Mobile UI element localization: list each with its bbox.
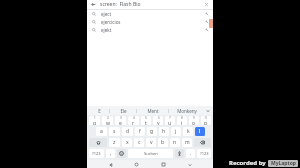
- button[interactable]: 0: [201, 116, 211, 125]
- staticText: g: [150, 128, 154, 135]
- button[interactable]: ?123: [197, 149, 211, 158]
- staticText: k: [187, 128, 190, 135]
- staticText: e: [119, 120, 122, 125]
- staticText: Monkeny: [177, 108, 197, 114]
- button[interactable]: 5: [141, 116, 151, 125]
- button[interactable]: j: [171, 127, 181, 136]
- button[interactable]: Voice input: [175, 149, 184, 158]
- button[interactable]: f: [135, 127, 145, 136]
- button[interactable]: c: [134, 138, 144, 147]
- button[interactable]: Ele: [110, 106, 136, 115]
- staticText: Suchen: [144, 151, 158, 156]
- staticText: Recorded by: [229, 159, 266, 167]
- staticText: a: [100, 128, 103, 135]
- button[interactable]: Hide keyboard: [186, 161, 193, 168]
- staticText: 7: [169, 116, 171, 120]
- staticText: v: [150, 139, 153, 146]
- staticText: 3: [120, 116, 122, 120]
- button[interactable]: 4: [128, 116, 139, 125]
- staticText: p: [204, 120, 208, 125]
- staticText: ?123: [92, 151, 101, 156]
- staticText: Ment: [147, 108, 159, 114]
- button[interactable]: 6: [153, 116, 163, 125]
- staticText: d: [126, 128, 130, 135]
- other: Insert suggestion: [205, 20, 209, 24]
- staticText: eject: [101, 11, 112, 17]
- staticText: x: [126, 139, 129, 146]
- staticText: h: [162, 128, 166, 135]
- button[interactable]: 9: [189, 116, 199, 125]
- staticText: t: [145, 120, 147, 125]
- button[interactable]: s: [109, 127, 120, 136]
- button[interactable]: Ment: [137, 106, 168, 115]
- button[interactable]: b: [158, 138, 168, 147]
- button[interactable]: 1: [89, 116, 100, 125]
- button[interactable]: Emoji: [117, 149, 126, 158]
- staticText: MyLaptop: [271, 160, 296, 167]
- button[interactable]: More suggestions: [204, 107, 212, 115]
- button[interactable]: d: [122, 127, 133, 136]
- button[interactable]: eject: [87, 10, 213, 18]
- staticText: m: [185, 139, 190, 146]
- button[interactable]: n: [170, 138, 180, 147]
- button[interactable]: h: [159, 127, 169, 136]
- staticText: j: [175, 128, 177, 135]
- staticText: f: [139, 128, 141, 135]
- button[interactable]: ?123: [89, 149, 104, 158]
- button[interactable]: 7: [165, 116, 175, 125]
- staticText: l: [199, 128, 201, 135]
- staticText: o: [192, 120, 196, 125]
- staticText: z: [113, 139, 116, 146]
- staticText: c: [138, 139, 141, 146]
- button[interactable]: ejekt: [87, 26, 213, 34]
- staticText: 1: [94, 116, 96, 120]
- staticText: u: [168, 120, 172, 125]
- staticText: .: [190, 150, 192, 157]
- button[interactable]: ejercicios: [87, 18, 213, 26]
- staticText: r: [132, 120, 135, 125]
- button[interactable]: a: [96, 127, 107, 136]
- staticText: 9: [193, 116, 195, 120]
- staticText: Ele: [120, 108, 127, 114]
- button[interactable]: x: [122, 138, 132, 147]
- button[interactable]: Shift: [89, 138, 107, 147]
- staticText: 2: [107, 116, 109, 120]
- button[interactable]: Monkeny: [169, 106, 204, 115]
- button[interactable]: Back: [107, 161, 114, 168]
- button[interactable]: Back: [87, 0, 213, 9]
- staticText: s: [113, 128, 116, 135]
- staticText: w: [106, 120, 110, 125]
- button[interactable]: .: [186, 149, 195, 158]
- button[interactable]: 2: [102, 116, 113, 125]
- button[interactable]: Backspace: [194, 138, 211, 147]
- button[interactable]: l: [195, 127, 205, 136]
- button[interactable]: m: [182, 138, 192, 147]
- button[interactable]: 8: [177, 116, 187, 125]
- staticText: n: [173, 139, 177, 146]
- button[interactable]: k: [183, 127, 193, 136]
- other: Back: [91, 2, 96, 7]
- staticText: ejercicios: [101, 19, 121, 25]
- staticText: 0: [205, 116, 207, 120]
- button[interactable]: Home: [133, 161, 140, 168]
- staticText: ?123: [200, 151, 209, 156]
- staticText: y: [157, 120, 160, 125]
- staticText: ,: [110, 150, 112, 157]
- other: Insert suggestion: [205, 12, 209, 16]
- staticText: i: [181, 120, 183, 125]
- other: Insert suggestion: [205, 28, 209, 32]
- button[interactable]: Suchen: [128, 149, 173, 158]
- button[interactable]: g: [147, 127, 157, 136]
- staticText: q: [93, 120, 97, 125]
- staticText: 6: [158, 116, 160, 120]
- staticText: screen: Flash Bio: [100, 1, 141, 8]
- button[interactable]: ,: [106, 149, 115, 158]
- button[interactable]: Recents: [160, 161, 167, 168]
- button[interactable]: z: [109, 138, 120, 147]
- button[interactable]: 3: [115, 116, 126, 125]
- staticText: 8: [181, 116, 183, 120]
- button[interactable]: v: [146, 138, 156, 147]
- button[interactable]: E: [90, 106, 109, 115]
- staticText: E: [98, 108, 101, 114]
- other: Clear: [204, 2, 209, 7]
